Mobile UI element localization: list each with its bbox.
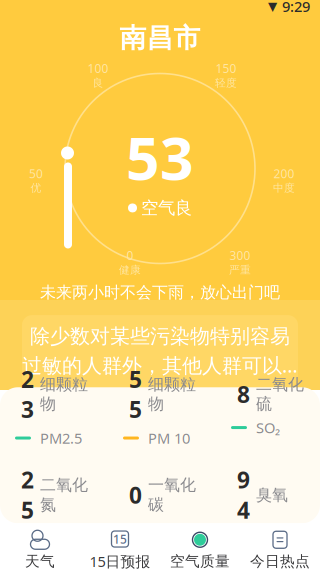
staticText: 55	[129, 364, 142, 424]
staticText: 9:29	[282, 0, 310, 16]
staticText: 23	[21, 364, 34, 424]
staticText: 优	[30, 181, 41, 195]
staticText: 中度	[273, 181, 295, 195]
staticText: 良	[92, 76, 103, 89]
staticText: NO₂	[40, 529, 67, 548]
button[interactable]: 今日热点	[240, 523, 320, 570]
staticText: SO₂	[256, 418, 280, 437]
staticText: 过敏的人群外，其他人群可以…	[22, 352, 298, 378]
staticText: 臭氧	[256, 485, 288, 505]
staticText: 100	[87, 60, 108, 76]
staticText: 94	[237, 465, 250, 525]
staticText: 严重	[229, 263, 251, 276]
staticText: 0	[129, 480, 142, 510]
staticText: 15	[113, 531, 127, 547]
button[interactable]: 空气质量	[160, 523, 240, 570]
staticText: 二氧化硫	[256, 374, 304, 414]
staticText: 除少数对某些污染物特别容易	[30, 324, 290, 349]
button[interactable]: 天气	[0, 523, 80, 570]
staticText: 53	[126, 118, 194, 196]
staticText: 25	[21, 465, 34, 525]
staticText: 天气	[25, 552, 55, 570]
staticText: 8	[237, 379, 250, 409]
staticText: PM 10	[148, 428, 190, 448]
staticText: ▼	[268, 0, 277, 13]
staticText: 150	[215, 60, 236, 76]
staticText: 一氧化碳	[148, 475, 196, 514]
staticText: CO	[148, 518, 168, 538]
staticText: 健康	[119, 263, 141, 276]
staticText: 细颗粒物	[148, 374, 196, 414]
staticText: 200	[273, 165, 294, 181]
staticText: 15日预报	[89, 551, 150, 570]
staticText: 0	[126, 247, 133, 263]
staticText: 空气质量	[170, 552, 230, 570]
staticText: PM2.5	[40, 428, 82, 448]
staticText: 细颗粒物	[40, 374, 88, 414]
staticText: 空气良	[141, 197, 192, 219]
staticText: 轻度	[215, 76, 237, 89]
staticText: 300	[229, 247, 250, 263]
staticText: 今日热点	[250, 552, 310, 570]
staticText: 二氧化氮	[40, 475, 88, 514]
staticText: 南昌市	[119, 22, 200, 54]
button[interactable]: 15	[80, 522, 160, 570]
staticText: 未来两小时不会下雨，放心出门吧	[40, 282, 280, 302]
staticText: 50	[29, 165, 43, 181]
